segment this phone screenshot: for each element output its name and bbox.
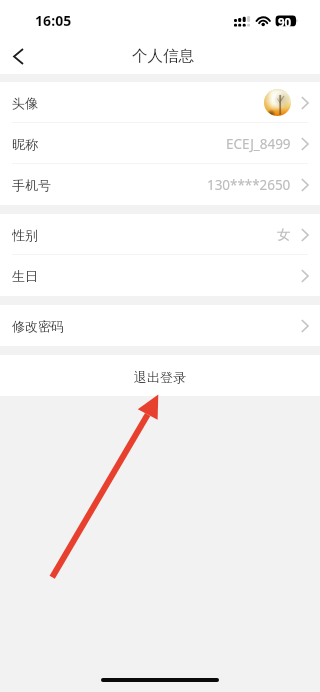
- staticText: 头像: [12, 95, 38, 111]
- staticText: 生日: [12, 268, 38, 284]
- button[interactable]: Back: [0, 38, 36, 74]
- staticText: 修改密码: [12, 318, 64, 334]
- button[interactable]: 修改密码: [0, 305, 320, 346]
- staticText: 130****2650: [207, 176, 291, 194]
- staticText: 16:05: [35, 11, 72, 30]
- staticText: 女: [277, 226, 291, 243]
- button[interactable]: 昵称: [0, 123, 320, 164]
- button[interactable]: 手机号: [0, 164, 320, 205]
- staticText: 性别: [12, 227, 38, 243]
- staticText: ECEJ_8499: [226, 135, 291, 153]
- staticText: 退出登录: [134, 369, 186, 385]
- button[interactable]: 头像: [0, 82, 320, 123]
- staticText: 昵称: [12, 136, 38, 152]
- staticText: 个人信息: [132, 46, 194, 66]
- button[interactable]: 退出登录: [0, 355, 320, 396]
- button[interactable]: 性别: [0, 214, 320, 255]
- staticText: 手机号: [12, 177, 51, 193]
- staticText: 90: [278, 15, 292, 31]
- button[interactable]: 生日: [0, 255, 320, 296]
